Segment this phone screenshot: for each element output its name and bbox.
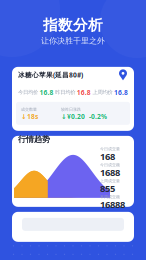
staticText: 较昨日涨跌 (61, 107, 81, 112)
staticText: 16.8 (77, 88, 91, 97)
staticText: 让你决胜千里之外 (41, 36, 105, 46)
staticText: 16888 (100, 198, 125, 210)
staticText: 16.8 (39, 88, 53, 97)
staticText: 今日成交量 (100, 146, 120, 151)
staticText: 上周均价 (92, 89, 112, 96)
staticText: 本周成交额 (100, 194, 120, 199)
staticText: 855 (100, 182, 115, 194)
staticText: 1688 (100, 166, 120, 178)
staticText: 今日均价 (18, 89, 38, 96)
staticText: 成交数量 (21, 107, 37, 112)
staticText: 上周成交量 (100, 178, 120, 183)
staticText: 今日成交额 (100, 162, 120, 167)
staticText: ↓¥0.20 -0.2% (61, 112, 107, 121)
staticText: 16.8 (114, 88, 128, 97)
button[interactable]: 产地 (118, 69, 128, 81)
staticText: ↓18s (21, 112, 38, 121)
staticText: 行情趋势 (18, 134, 50, 144)
staticText: 冰糖心苹果(延昌80#) (18, 70, 83, 79)
staticText: 昨日均价 (55, 89, 75, 96)
staticText: 168 (100, 150, 115, 162)
staticText: 指数分析 (43, 16, 103, 34)
